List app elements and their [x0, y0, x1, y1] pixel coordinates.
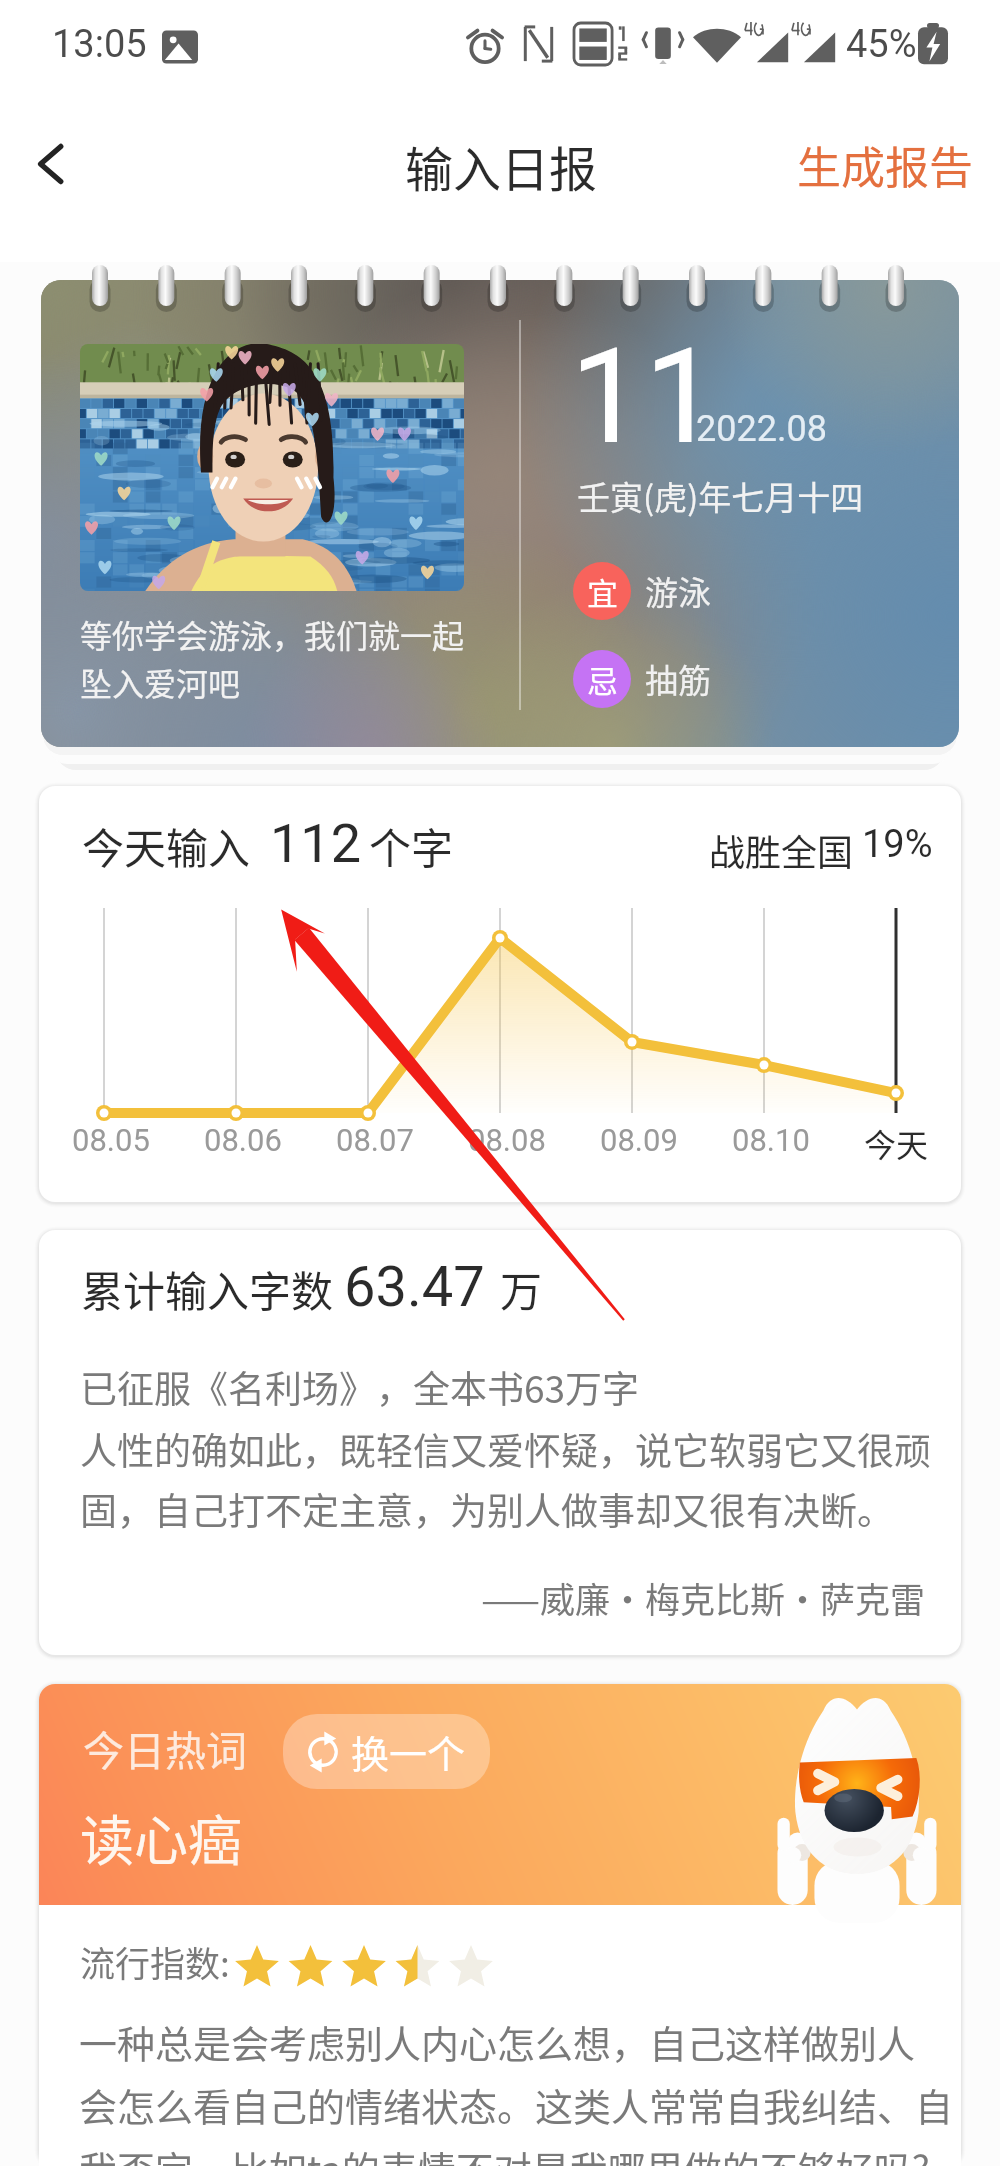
- button[interactable]: 等你学会游泳，我们就一起: [41, 280, 959, 747]
- staticText: 63.47: [344, 1254, 485, 1320]
- staticText: 输入日报: [405, 131, 598, 201]
- staticText: 08.07: [336, 1122, 414, 1158]
- button[interactable]: Back: [14, 126, 90, 202]
- staticText: 08.08: [468, 1122, 546, 1158]
- staticText: 08.10: [732, 1122, 810, 1158]
- staticText: 战胜全国: [709, 824, 854, 876]
- staticText: 万: [500, 1258, 543, 1319]
- staticText: 忌: [587, 657, 618, 702]
- staticText: 今天: [864, 1120, 929, 1166]
- staticText: 会怎么看自己的情绪状态。这类人常常自我纠结、自: [79, 2077, 954, 2132]
- staticText: 今天输入: [82, 815, 251, 876]
- staticText: 08.06: [204, 1122, 282, 1158]
- button[interactable]: 换一个: [283, 1714, 490, 1789]
- staticText: 生成报告: [797, 133, 973, 197]
- staticText: 一种总是会考虑别人内心怎么想，自己这样做别人: [79, 2014, 916, 2069]
- staticText: 等你学会游泳，我们就一起: [80, 611, 465, 657]
- staticText: 45%: [846, 22, 917, 67]
- staticText: 换一个: [351, 1724, 466, 1779]
- staticText: ——威廉·梅克比斯·萨克雷: [83, 1572, 925, 1623]
- staticText: 抽筋: [645, 655, 711, 703]
- staticText: 读心癌: [80, 1798, 242, 1876]
- staticText: 我否定，比如ta的表情不对是我哪里做的不够好吗?: [79, 2140, 930, 2166]
- staticText: 流行指数:: [80, 1936, 230, 1987]
- staticText: 人性的确如此，既轻信又爱怀疑，说它软弱它又很顽: [80, 1422, 931, 1476]
- staticText: 游泳: [645, 567, 711, 615]
- button[interactable]: 今日热词: [39, 1684, 961, 2166]
- staticText: 2022.08: [696, 408, 827, 450]
- staticText: 08.05: [72, 1122, 150, 1158]
- button[interactable]: 累计输入字数: [39, 1230, 961, 1655]
- staticText: 累计输入字数: [81, 1258, 334, 1319]
- staticText: 坠入爱河吧: [80, 659, 241, 705]
- button[interactable]: 生成报告: [797, 133, 973, 197]
- staticText: 宜: [587, 569, 618, 614]
- staticText: 112: [270, 812, 362, 875]
- staticText: 已征服《名利场》，全本书63万字: [80, 1360, 640, 1414]
- staticText: 壬寅(虎)年七月十四: [577, 472, 864, 520]
- staticText: 个字: [369, 815, 454, 876]
- button[interactable]: 今天输入: [39, 786, 961, 1202]
- staticText: 固，自己打不定主意，为别人做事却又很有决断。: [80, 1482, 894, 1536]
- staticText: 08.09: [600, 1122, 678, 1158]
- staticText: 19%: [862, 822, 933, 867]
- staticText: 13:05: [52, 22, 147, 67]
- staticText: 今日热词: [83, 1718, 247, 1777]
- staticText: 11: [570, 320, 719, 475]
